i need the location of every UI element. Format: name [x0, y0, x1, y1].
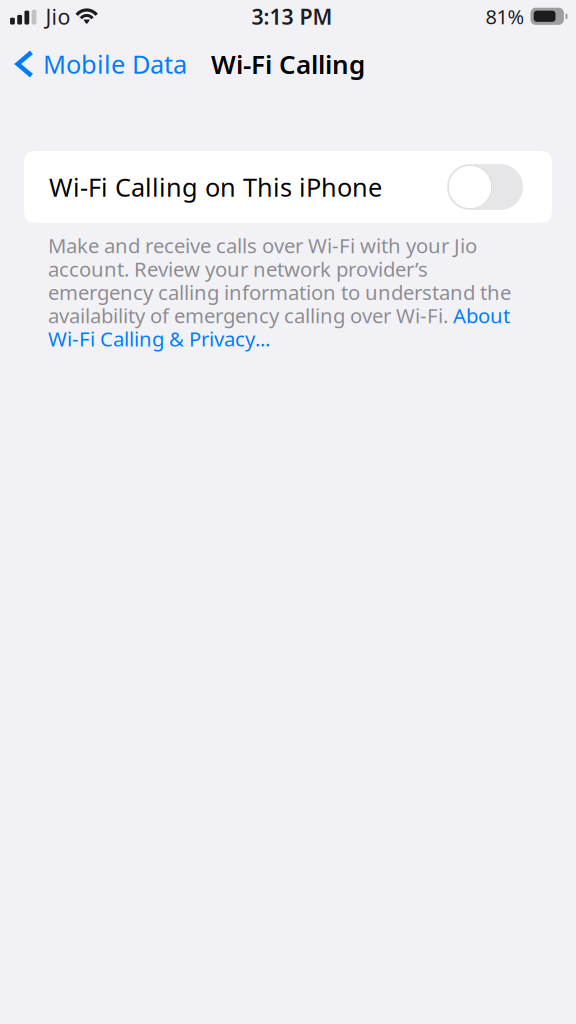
staticText: Wi-Fi Calling & Privacy...	[48, 325, 270, 352]
staticText: 3:13 PM	[251, 2, 332, 31]
staticText: Make and receive calls over Wi-Fi with y…	[48, 232, 477, 259]
button[interactable]: Mobile Data	[0, 35, 199, 93]
staticText: emergency calling information to underst…	[48, 279, 511, 305]
staticText: 81%	[485, 3, 524, 30]
staticText: About	[448, 302, 510, 329]
button[interactable]: About	[448, 302, 510, 329]
staticText: Jio	[45, 2, 70, 31]
button[interactable]: Wi-Fi Calling on This iPhone	[24, 151, 552, 223]
staticText: account. Review your network provider’s	[48, 255, 428, 282]
staticText: Wi-Fi Calling	[211, 47, 365, 81]
button[interactable]: Wi-Fi Calling & Privacy...	[48, 325, 270, 352]
staticText: Wi-Fi Calling on This iPhone	[49, 170, 382, 204]
staticText: availability of emergency calling over W…	[48, 302, 448, 329]
staticText: Mobile Data	[43, 47, 187, 81]
